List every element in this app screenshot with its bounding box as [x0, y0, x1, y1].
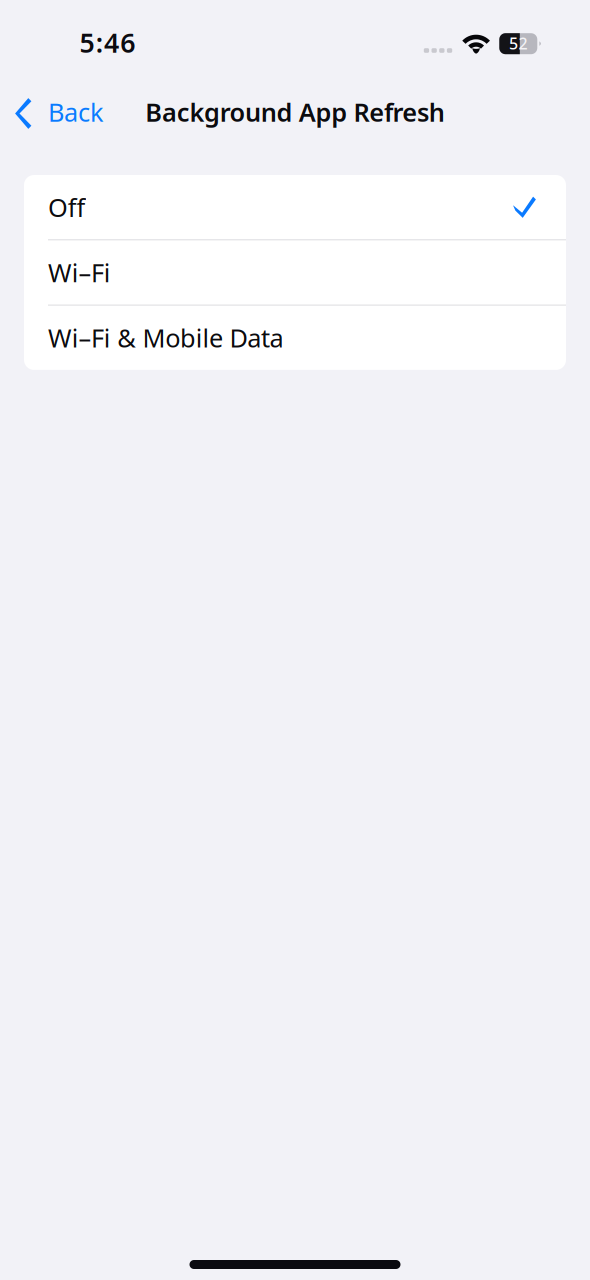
staticText: 5: [509, 33, 518, 54]
staticText: Back: [48, 95, 104, 129]
staticText: 5:46: [79, 25, 135, 60]
staticText: Background App Refresh: [145, 95, 445, 129]
staticText: Wi–Fi: [48, 256, 111, 289]
button[interactable]: Back: [0, 87, 104, 137]
button[interactable]: Wi–Fi & Mobile Data: [24, 306, 566, 370]
staticText: Off: [48, 190, 85, 224]
button[interactable]: Wi–Fi: [24, 240, 566, 305]
staticText: 2: [519, 33, 528, 54]
staticText: Wi–Fi & Mobile Data: [48, 321, 284, 354]
button[interactable]: Off: [24, 175, 566, 239]
